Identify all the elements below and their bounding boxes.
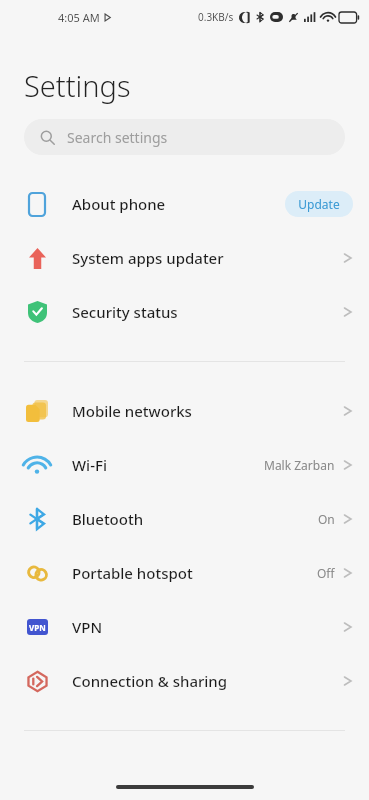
staticText: 0.3KB/s <box>198 10 234 24</box>
staticText: VPN <box>72 617 343 637</box>
button[interactable]: Search settings <box>24 119 345 155</box>
button[interactable]: VPN <box>0 600 369 654</box>
button[interactable]: System apps updater <box>0 231 369 285</box>
staticText: Wi-Fi <box>72 455 264 475</box>
staticText: Bluetooth <box>72 509 318 529</box>
button[interactable]: Update <box>285 191 353 217</box>
staticText: Security status <box>72 302 343 322</box>
other: About phone <box>29 193 45 216</box>
other: Mobile networks <box>26 400 48 422</box>
other: Bluetooth <box>26 508 48 530</box>
staticText: System apps updater <box>72 248 343 268</box>
staticText: About phone <box>72 194 285 214</box>
button[interactable]: Portable hotspot <box>0 546 369 600</box>
button[interactable]: Wi-Fi <box>0 438 369 492</box>
staticText: Mobile networks <box>72 401 343 421</box>
staticText: Search settings <box>67 128 168 147</box>
staticText: Update <box>298 196 340 212</box>
other: Portable hotspot <box>27 563 48 584</box>
button[interactable]: Bluetooth <box>0 492 369 546</box>
other: Security status <box>28 301 47 323</box>
other: System apps updater <box>29 248 46 269</box>
staticText: Off <box>317 565 335 581</box>
button[interactable]: Connection & sharing <box>0 654 369 708</box>
button[interactable]: Mobile networks <box>0 384 369 438</box>
staticText: VPN <box>29 622 46 633</box>
staticText: 4:05 AM <box>58 10 100 25</box>
button[interactable]: About phone <box>0 177 369 231</box>
button[interactable]: Security status <box>0 285 369 339</box>
staticText: Settings <box>24 66 131 105</box>
staticText: Malk Zarban <box>264 457 335 473</box>
staticText: On <box>318 511 335 527</box>
staticText: Portable hotspot <box>72 563 317 583</box>
other: Wi-Fi <box>26 454 48 476</box>
staticText: Connection & sharing <box>72 671 343 691</box>
other: Connection & sharing <box>27 671 48 692</box>
other: VPN <box>27 619 48 635</box>
